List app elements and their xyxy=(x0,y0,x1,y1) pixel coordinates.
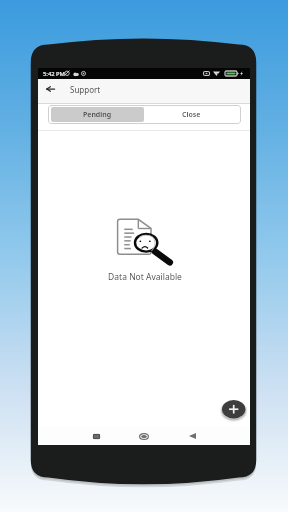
button[interactable]: Back xyxy=(184,428,200,444)
button[interactable]: Close xyxy=(144,107,238,122)
button[interactable]: Pending xyxy=(51,107,144,122)
button[interactable]: Back xyxy=(42,81,58,97)
button[interactable]: Add xyxy=(220,398,248,421)
button[interactable]: Home xyxy=(136,428,152,444)
staticText: Data Not Available xyxy=(108,271,182,283)
staticText: 5:42 PM xyxy=(43,70,65,78)
button[interactable]: Recents xyxy=(88,428,104,444)
staticText: Close xyxy=(182,110,201,120)
staticText: Pending xyxy=(83,110,112,120)
staticText: Support xyxy=(70,84,101,95)
